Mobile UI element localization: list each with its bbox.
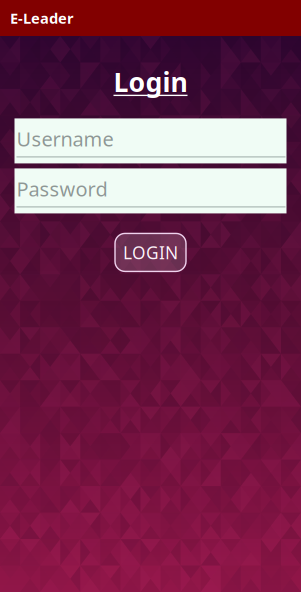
staticText: Login [113,64,187,99]
staticText: E-Leader [10,8,74,28]
button[interactable]: LOGIN [115,233,186,271]
staticText: Password [16,175,107,202]
staticText: Username [16,125,113,152]
staticText: LOGIN [123,241,178,264]
